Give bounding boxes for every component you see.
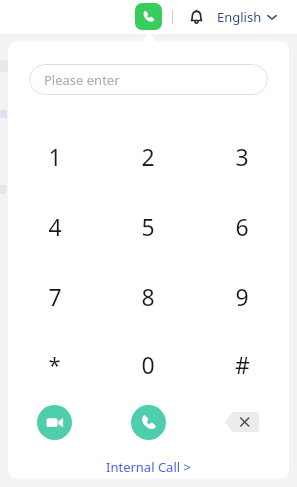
button[interactable]: 9 [195,261,289,331]
button[interactable]: Notifications [185,6,207,28]
staticText: # [235,349,250,380]
button[interactable]: 0 [101,331,195,397]
button[interactable]: Internal Call > [98,455,199,479]
button[interactable]: 4 [8,191,101,261]
staticText: Please enter [44,71,120,89]
staticText: * [48,349,61,379]
button[interactable]: 8 [101,261,195,331]
staticText: 7 [48,281,62,312]
button[interactable]: 2 [101,121,195,191]
button[interactable]: * [8,331,101,397]
staticText: Internal Call > [106,458,191,476]
staticText: 5 [141,211,155,242]
button[interactable]: English [217,8,277,26]
button[interactable]: Video call [37,405,72,440]
staticText: 1 [48,141,62,172]
button[interactable]: Please enter [29,64,268,95]
staticText: 3 [235,141,249,172]
staticText: 9 [235,281,249,312]
button[interactable]: Call [131,405,166,440]
staticText: English [217,8,262,26]
button[interactable]: 5 [101,191,195,261]
button[interactable]: 1 [8,121,101,191]
button[interactable]: Dial pad [135,3,162,30]
staticText: 6 [235,211,249,242]
button[interactable]: 6 [195,191,289,261]
button[interactable]: 7 [8,261,101,331]
staticText: 8 [141,281,155,312]
staticText: 2 [141,141,155,172]
button[interactable]: Backspace [225,412,259,432]
button[interactable]: # [195,331,289,397]
button[interactable]: 3 [195,121,289,191]
staticText: 4 [48,211,62,242]
staticText: 0 [141,349,155,380]
